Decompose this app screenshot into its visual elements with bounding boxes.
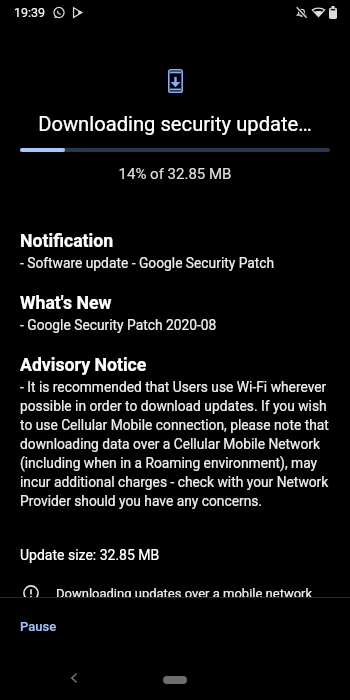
staticText: - Google Security Patch 2020-08	[20, 317, 217, 333]
staticText: 19:39	[14, 5, 46, 20]
staticText: Notification	[20, 231, 114, 252]
staticText: Advisory Notice	[20, 355, 147, 376]
staticText: - Software update - Google Security Patc…	[20, 255, 275, 271]
button[interactable]: Home	[150, 668, 200, 692]
staticText: Downloading security update…	[10, 112, 340, 136]
staticText: 14% of 32.85 MB	[0, 165, 350, 183]
staticText: Update size: 32.85 MB	[20, 547, 160, 563]
button[interactable]: Back	[59, 663, 89, 693]
button[interactable]: Pause	[10, 612, 67, 641]
staticText: Downloading updates over a mobile networ…	[56, 586, 315, 597]
staticText: What's New	[20, 293, 112, 314]
staticText: - It is recommended that Users use Wi-Fi…	[20, 379, 340, 509]
staticText: Pause	[20, 619, 57, 634]
